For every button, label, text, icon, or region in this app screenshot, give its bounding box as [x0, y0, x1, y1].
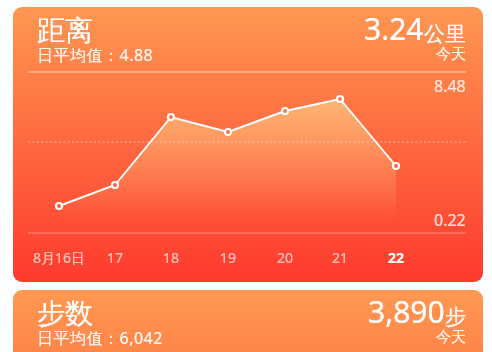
staticText: 公里 [424, 21, 466, 47]
button[interactable]: 距离 [13, 7, 483, 282]
staticText: 今天 [436, 328, 466, 345]
staticText: 步数 [37, 296, 93, 331]
staticText: 今天 [436, 45, 466, 62]
staticText: 步 [445, 304, 466, 330]
staticText: 8月16日 [33, 248, 86, 267]
staticText: 17 [107, 248, 124, 267]
staticText: 0.22 [434, 209, 466, 231]
staticText: 22 [388, 248, 405, 267]
staticText: 21 [332, 248, 349, 267]
staticText: 日平均值：4.88 [37, 44, 154, 66]
button[interactable]: 步数 [13, 290, 483, 352]
staticText: 3.24 [364, 8, 424, 49]
staticText: 日平均值：6,042 [37, 327, 163, 349]
staticText: 18 [163, 248, 180, 267]
staticText: 19 [220, 248, 237, 267]
staticText: 距离 [37, 13, 93, 48]
staticText: 20 [277, 248, 294, 267]
staticText: 3,890 [368, 291, 445, 332]
staticText: 8.48 [434, 75, 466, 97]
